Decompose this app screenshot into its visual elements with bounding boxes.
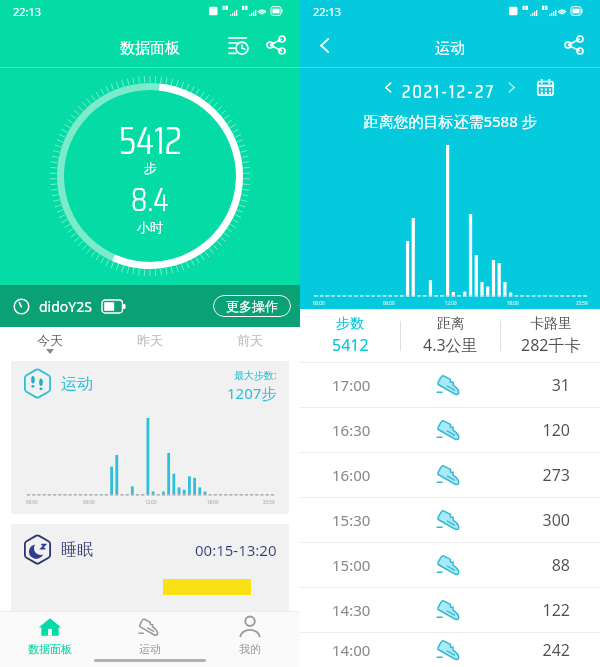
staticText: 距离 <box>437 315 465 333</box>
button[interactable]: 运动 <box>100 612 200 659</box>
button[interactable]: 15:30 <box>300 498 600 542</box>
staticText: 今天 <box>37 332 63 348</box>
staticText: 31 <box>500 374 570 396</box>
staticText: 14:00 <box>332 640 400 660</box>
button[interactable]: 16:00 <box>300 453 600 497</box>
staticText: 睡眠 <box>61 540 93 560</box>
staticText: 00:00 <box>26 499 38 505</box>
button[interactable]: 16:30 <box>300 408 600 452</box>
staticText: didoY2S <box>39 297 92 316</box>
staticText: 22:13 <box>313 4 342 19</box>
staticText: 273 <box>500 464 570 486</box>
staticText: 运动 <box>61 374 93 394</box>
staticText: 18:00 <box>507 300 519 306</box>
button[interactable]: 我的 <box>200 612 300 659</box>
staticText: 282千卡 <box>521 334 581 356</box>
staticText: 00:00 <box>313 300 325 306</box>
staticText: 15:00 <box>332 555 400 575</box>
button[interactable]: 17:00 <box>300 363 600 407</box>
button[interactable]: Next day <box>500 76 522 98</box>
staticText: 我的 <box>239 642 261 656</box>
staticText: 120 <box>500 419 570 441</box>
staticText: 00:15-13:20 <box>195 540 277 560</box>
staticText: 300 <box>500 509 570 531</box>
staticText: 12:00 <box>145 499 157 505</box>
staticText: 运动 <box>139 642 161 656</box>
button[interactable]: 距离 <box>401 315 500 356</box>
staticText: 12:00 <box>445 300 457 306</box>
staticText: 122 <box>500 599 570 621</box>
button[interactable]: Share <box>261 30 291 60</box>
staticText: 8.4 <box>131 174 169 226</box>
staticText: 小时 <box>137 219 163 235</box>
button[interactable]: 14:00 <box>300 633 600 667</box>
staticText: 4.3公里 <box>423 334 478 356</box>
button[interactable]: 昨天 <box>100 327 200 361</box>
button[interactable]: 前天 <box>200 327 300 361</box>
staticText: 5412 <box>332 334 369 356</box>
button[interactable]: 睡眠 <box>11 524 289 611</box>
button[interactable]: 更多操作 <box>213 295 291 317</box>
staticText: 22:13 <box>13 4 42 19</box>
staticText: 步数 <box>336 315 364 333</box>
button[interactable]: Calendar <box>532 76 558 98</box>
staticText: 23:59 <box>263 499 275 505</box>
button[interactable]: 数据面板 <box>0 612 100 659</box>
staticText: 5412 <box>119 110 182 171</box>
staticText: 最大步数: <box>234 368 277 382</box>
staticText: 16:30 <box>332 420 400 440</box>
staticText: 15:30 <box>332 510 400 530</box>
staticText: 06:00 <box>383 300 395 306</box>
staticText: 步 <box>144 160 157 176</box>
staticText: 14:30 <box>332 600 400 620</box>
staticText: 1207步 <box>227 383 277 403</box>
button[interactable]: 14:30 <box>300 588 600 632</box>
staticText: 23:59 <box>576 300 588 306</box>
staticText: 更多操作 <box>226 298 278 314</box>
staticText: 2021-12-27 <box>402 76 496 98</box>
staticText: 242 <box>500 639 570 661</box>
staticText: 运动 <box>435 39 465 58</box>
staticText: 卡路里 <box>530 315 572 333</box>
staticText: 88 <box>500 554 570 576</box>
staticText: 距离您的目标还需5588 步 <box>300 111 600 131</box>
staticText: 数据面板 <box>28 642 72 656</box>
button[interactable]: 今天 <box>0 327 100 361</box>
button[interactable]: 步数 <box>300 315 400 356</box>
staticText: 前天 <box>237 332 263 348</box>
button[interactable]: Previous day <box>377 76 399 98</box>
button[interactable]: 卡路里 <box>501 315 600 356</box>
staticText: 16:00 <box>332 465 400 485</box>
button[interactable]: History <box>223 30 253 60</box>
staticText: 17:00 <box>332 375 400 395</box>
button[interactable]: Back <box>308 29 340 61</box>
staticText: 18:00 <box>207 499 219 505</box>
staticText: 昨天 <box>137 332 163 348</box>
staticText: 数据面板 <box>120 39 180 58</box>
button[interactable]: Share <box>559 30 589 60</box>
button[interactable]: 15:00 <box>300 543 600 587</box>
button[interactable]: 运动 <box>11 361 289 514</box>
staticText: 06:00 <box>83 499 95 505</box>
